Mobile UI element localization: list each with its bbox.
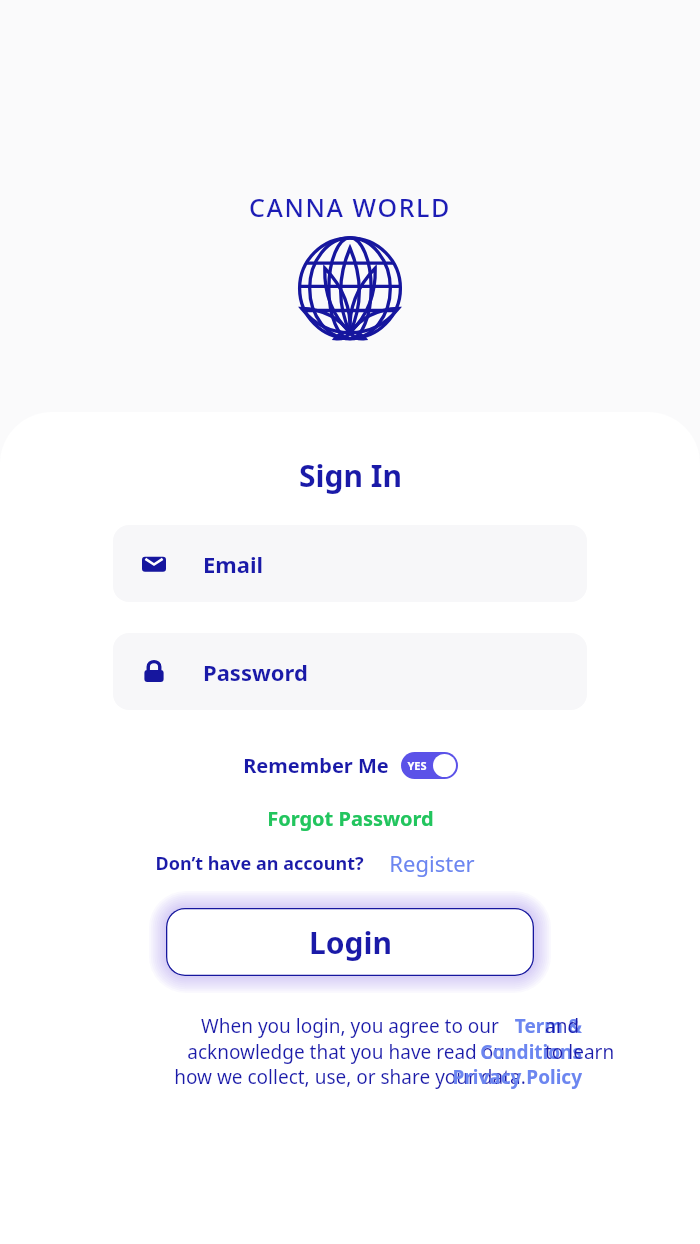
button[interactable]: Login <box>166 908 534 976</box>
staticText: Sign In <box>299 455 402 496</box>
button[interactable]: Email <box>113 525 587 602</box>
staticText: Password <box>203 657 308 687</box>
staticText: Login <box>309 922 392 963</box>
staticText: Email <box>203 549 264 579</box>
staticText: CANNA WORLD <box>249 190 451 224</box>
staticText: Register <box>389 848 475 878</box>
staticText: When you login, you agree to our acknowl… <box>174 1013 526 1089</box>
staticText: Term & Conditions Privacy Policy <box>432 1013 582 1089</box>
button[interactable]: Forgot Password <box>263 803 438 834</box>
staticText: Don’t have an account? <box>155 851 364 876</box>
button[interactable]: Password <box>113 633 587 710</box>
button[interactable]: Remember me toggle, on <box>401 752 458 779</box>
staticText: Remember Me <box>243 752 389 779</box>
button[interactable]: Register <box>386 846 478 880</box>
staticText: Forgot Password <box>267 805 434 832</box>
button[interactable]: Term & Conditions Privacy Policy <box>432 1013 582 1089</box>
staticText: and to learn <box>545 1013 615 1064</box>
staticText: YES <box>407 758 427 773</box>
